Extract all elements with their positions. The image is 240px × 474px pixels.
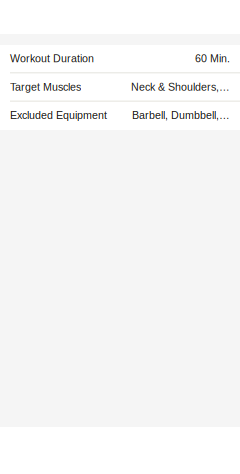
- staticText: Target Muscles: [10, 81, 81, 93]
- button[interactable]: Workout Duration: [10, 53, 230, 65]
- button[interactable]: Excluded Equipment: [10, 109, 230, 121]
- staticText: Neck & Shoulders,…: [131, 81, 230, 93]
- staticText: Workout Duration: [10, 53, 94, 65]
- staticText: Excluded Equipment: [10, 109, 107, 121]
- button[interactable]: Target Muscles: [10, 81, 230, 93]
- staticText: Barbell, Dumbbell,…: [132, 109, 230, 121]
- staticText: 60 Min.: [195, 53, 230, 65]
